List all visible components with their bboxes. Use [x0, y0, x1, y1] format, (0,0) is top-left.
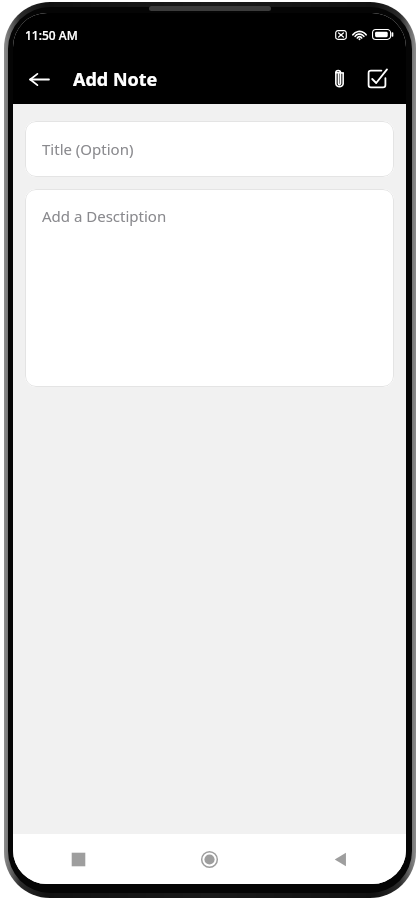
button[interactable]: Back	[19, 59, 59, 99]
button[interactable]: Recent apps	[13, 834, 144, 884]
staticText: Title (Option)	[42, 139, 134, 159]
button[interactable]: Add a Desctiption	[25, 189, 394, 387]
button[interactable]: Home	[144, 834, 275, 884]
button[interactable]: Save note	[358, 60, 396, 98]
button[interactable]: Back	[275, 834, 406, 884]
button[interactable]: Title (Option)	[25, 121, 394, 177]
staticText: Add Note	[73, 67, 158, 92]
staticText: 11:50 AM	[25, 27, 78, 43]
button[interactable]: Attach file	[320, 60, 358, 98]
staticText: Add a Desctiption	[42, 206, 167, 226]
